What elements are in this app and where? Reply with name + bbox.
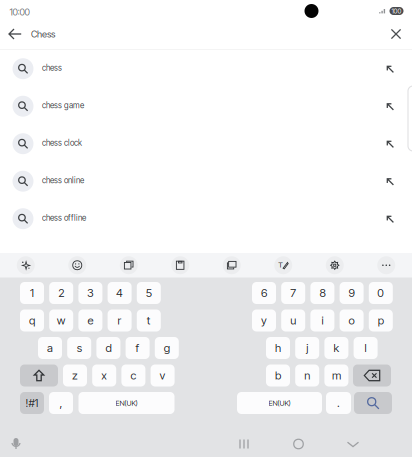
- staticText: q: [29, 314, 35, 327]
- button[interactable]: More options: [360, 253, 412, 277]
- button[interactable]: c: [121, 364, 145, 386]
- button[interactable]: l: [354, 337, 378, 359]
- staticText: EN(UK): [115, 399, 137, 407]
- button[interactable]: 4: [108, 282, 132, 304]
- button[interactable]: x: [92, 364, 116, 386]
- button[interactable]: y: [252, 309, 276, 331]
- button[interactable]: chess clock: [0, 125, 412, 162]
- staticText: 4: [116, 286, 123, 300]
- button[interactable]: v: [151, 364, 175, 386]
- staticText: u: [290, 314, 296, 327]
- button[interactable]: chess offline: [0, 200, 412, 237]
- button[interactable]: Back: [0, 19, 30, 49]
- staticText: T: [277, 259, 283, 270]
- staticText: j: [306, 341, 308, 355]
- button[interactable]: e: [78, 309, 102, 331]
- button[interactable]: Shift: [20, 364, 58, 386]
- staticText: 5: [146, 286, 152, 300]
- button[interactable]: 1: [20, 282, 44, 304]
- staticText: s: [77, 341, 82, 355]
- staticText: 10:00: [9, 6, 29, 18]
- button[interactable]: j: [295, 337, 319, 359]
- staticText: a: [47, 341, 53, 355]
- staticText: 3: [87, 286, 94, 300]
- button[interactable]: z: [63, 364, 87, 386]
- button[interactable]: k: [324, 337, 348, 359]
- button[interactable]: a: [38, 337, 62, 359]
- button[interactable]: q: [20, 309, 44, 331]
- button[interactable]: 7: [281, 282, 305, 304]
- button[interactable]: r: [108, 309, 132, 331]
- staticText: .: [337, 396, 340, 410]
- button[interactable]: chess game: [0, 87, 412, 125]
- button[interactable]: Stickers: [103, 253, 154, 277]
- staticText: chess offline: [42, 213, 86, 223]
- button[interactable]: 2: [49, 282, 73, 304]
- button[interactable]: !#1: [20, 392, 44, 414]
- button[interactable]: n: [295, 364, 319, 386]
- button[interactable]: Recents: [226, 431, 262, 457]
- button[interactable]: 3: [78, 282, 102, 304]
- button[interactable]: p: [369, 309, 393, 331]
- button[interactable]: f: [126, 337, 150, 359]
- button[interactable]: w: [49, 309, 73, 331]
- staticText: h: [275, 341, 281, 355]
- button[interactable]: o: [340, 309, 364, 331]
- button[interactable]: 8: [310, 282, 334, 304]
- button[interactable]: Search: [354, 392, 392, 414]
- button[interactable]: Chess: [31, 22, 91, 46]
- button[interactable]: 6: [252, 282, 276, 304]
- button[interactable]: 0: [369, 282, 393, 304]
- staticText: g: [164, 341, 170, 355]
- staticText: chess: [42, 63, 62, 73]
- button[interactable]: d: [96, 337, 120, 359]
- button[interactable]: Clipboard: [154, 253, 206, 277]
- staticText: !#1: [25, 396, 38, 409]
- button[interactable]: EN(UK): [237, 392, 322, 414]
- button[interactable]: m: [324, 364, 348, 386]
- staticText: Chess: [31, 28, 55, 40]
- button[interactable]: Handwriting: [257, 253, 309, 277]
- staticText: chess online: [42, 175, 84, 185]
- button[interactable]: EN(UK): [78, 392, 174, 414]
- button[interactable]: Clear: [382, 20, 410, 48]
- button[interactable]: 9: [340, 282, 364, 304]
- staticText: 0: [377, 286, 384, 300]
- staticText: 2: [58, 286, 64, 300]
- staticText: p: [378, 314, 384, 327]
- button[interactable]: .: [326, 392, 351, 414]
- staticText: i: [321, 314, 323, 327]
- button[interactable]: i: [310, 309, 334, 331]
- button[interactable]: Settings: [309, 253, 360, 277]
- staticText: z: [72, 369, 78, 382]
- button[interactable]: chess online: [0, 162, 412, 200]
- staticText: b: [275, 369, 281, 382]
- staticText: k: [333, 341, 339, 355]
- staticText: chess clock: [42, 138, 82, 148]
- staticText: e: [87, 314, 93, 327]
- button[interactable]: u: [281, 309, 305, 331]
- button[interactable]: Backspace: [353, 364, 391, 386]
- button[interactable]: g: [155, 337, 179, 359]
- button[interactable]: t: [137, 309, 161, 331]
- button[interactable]: Voice input: [3, 431, 29, 457]
- button[interactable]: Home: [280, 431, 316, 457]
- button[interactable]: Emoji: [51, 253, 103, 277]
- staticText: 1: [30, 286, 34, 300]
- staticText: 7: [290, 286, 296, 300]
- staticText: f: [136, 341, 140, 355]
- button[interactable]: Back: [335, 431, 371, 457]
- button[interactable]: Assistant: [0, 253, 51, 277]
- staticText: t: [147, 314, 151, 327]
- staticText: w: [57, 314, 66, 327]
- staticText: o: [349, 314, 355, 327]
- button[interactable]: 5: [137, 282, 161, 304]
- staticText: c: [130, 369, 136, 382]
- button[interactable]: ,: [49, 392, 73, 414]
- button[interactable]: chess: [0, 50, 412, 87]
- button[interactable]: b: [266, 364, 290, 386]
- button[interactable]: h: [266, 337, 290, 359]
- button[interactable]: Split keyboard: [206, 253, 257, 277]
- button[interactable]: s: [67, 337, 91, 359]
- staticText: n: [304, 369, 310, 382]
